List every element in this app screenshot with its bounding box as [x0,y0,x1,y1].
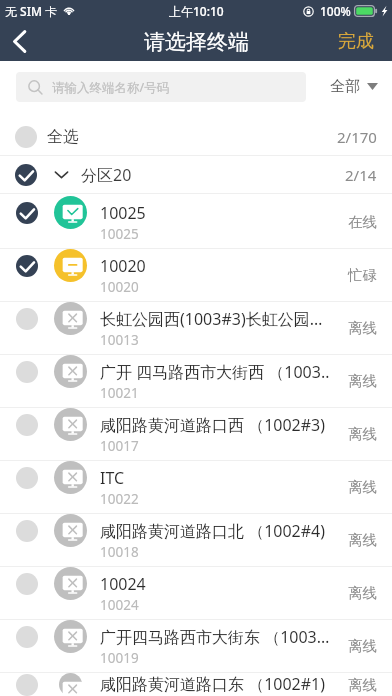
staticText: 10022 [100,490,139,508]
button[interactable]: 10025 [0,196,392,248]
button[interactable]: 请输入终端名称/号码 [16,72,306,102]
staticText: 10024 [100,573,146,595]
staticText: 咸阳路黄河道路口东 （1002#1) [100,673,326,695]
staticText: 离线 [348,478,377,496]
button[interactable]: 完成 [322,22,392,61]
button[interactable]: 广开 四马路西市大街西 （1003… [0,355,392,407]
staticText: 无 SIM 卡 [5,3,58,19]
staticText: 10021 [100,384,139,402]
staticText: 忙碌 [348,266,377,284]
staticText: 离线 [348,319,377,337]
button[interactable]: 长虹公园西(1003#3)长虹公园… [0,302,392,354]
button[interactable]: 咸阳路黄河道路口西 （1002#3) [0,408,392,460]
button[interactable]: 10020 [0,249,392,301]
button[interactable]: 返回 [0,22,40,61]
staticText: 10020 [100,255,146,277]
staticText: 请选择终端 [144,29,249,55]
button[interactable]: 全部 [314,71,392,102]
staticText: 离线 [348,584,377,602]
staticText: 2/14 [345,165,377,185]
staticText: 10025 [100,225,139,243]
button[interactable]: 咸阳路黄河道路口北 （1002#4) [0,514,392,566]
staticText: 离线 [348,425,377,443]
staticText: 广开 四马路西市大街西 （1003… [100,361,330,383]
staticText: 咸阳路黄河道路口北 （1002#4) [100,520,326,542]
button[interactable]: 广开四马路西市大街东 （1003… [0,620,392,672]
staticText: 全选 [47,127,79,147]
staticText: 离线 [348,372,377,390]
staticText: 在线 [348,213,377,231]
button[interactable]: 咸阳路黄河道路口东 （1002#1) [0,673,392,696]
staticText: 10024 [100,596,139,614]
button[interactable]: ITC [0,461,392,513]
staticText: 10018 [100,543,139,561]
staticText: 广开四马路西市大街东 （1003… [100,626,330,648]
button[interactable]: 10024 [0,567,392,619]
staticText: 100% [320,3,351,19]
staticText: 全部 [330,77,360,96]
button[interactable]: 全选 [0,118,392,155]
staticText: 离线 [348,637,377,655]
staticText: 完成 [338,30,374,53]
staticText: 离线 [348,676,377,694]
staticText: 上午10:10 [169,3,224,19]
button[interactable]: 分区20 [0,156,392,193]
staticText: 咸阳路黄河道路口西 （1002#3) [100,414,326,436]
staticText: 分区20 [81,164,132,186]
staticText: 10019 [100,649,139,667]
staticText: 2/170 [337,127,377,147]
staticText: 10017 [100,437,139,455]
staticText: 10020 [100,278,139,296]
staticText: ITC [100,467,125,489]
staticText: 离线 [348,531,377,549]
staticText: 请输入终端名称/号码 [52,79,170,96]
staticText: 10025 [100,202,146,224]
staticText: 10013 [100,331,139,349]
staticText: 长虹公园西(1003#3)长虹公园… [100,308,323,330]
